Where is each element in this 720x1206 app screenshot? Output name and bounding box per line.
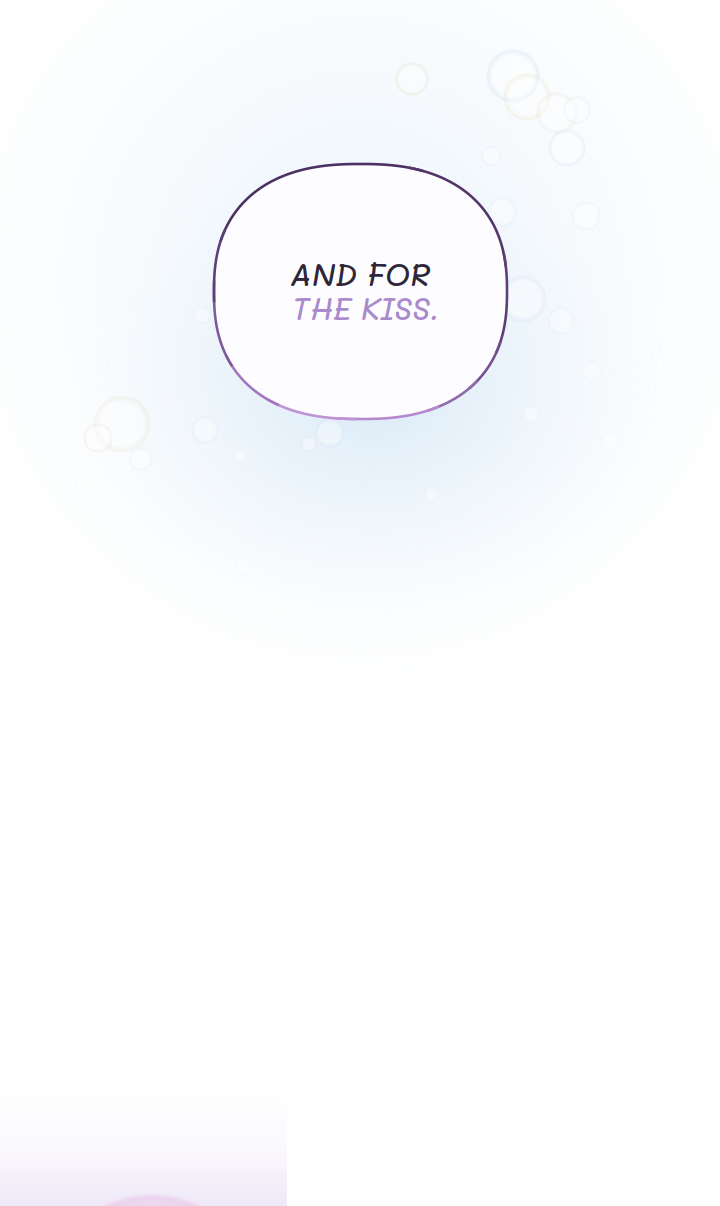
staticText: THE KISS. [292,287,439,328]
staticText: AND FOR [290,253,430,294]
